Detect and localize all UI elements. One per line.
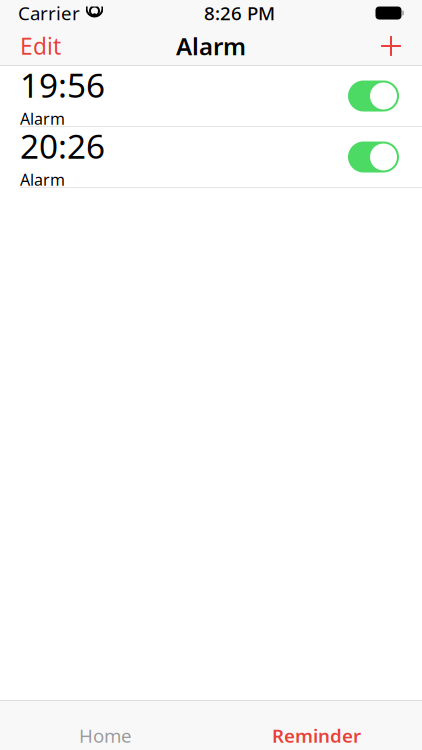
staticText: 20:26: [20, 124, 105, 168]
button[interactable]: 19:56: [0, 66, 422, 126]
staticText: Home: [79, 723, 132, 748]
staticText: Alarm: [20, 108, 65, 129]
button[interactable]: Edit: [0, 26, 81, 66]
button[interactable]: 20:26: [0, 127, 422, 187]
staticText: Edit: [20, 31, 61, 61]
staticText: 8:26 PM: [204, 1, 275, 25]
button[interactable]: Reminder: [211, 700, 422, 750]
staticText: Alarm: [20, 169, 65, 190]
staticText: Reminder: [272, 723, 361, 748]
button[interactable]: Home: [0, 700, 211, 750]
staticText: 19:56: [20, 63, 105, 107]
button[interactable]: Add Alarm: [360, 26, 422, 66]
staticText: Carrier: [18, 1, 80, 25]
staticText: Alarm: [176, 30, 246, 62]
